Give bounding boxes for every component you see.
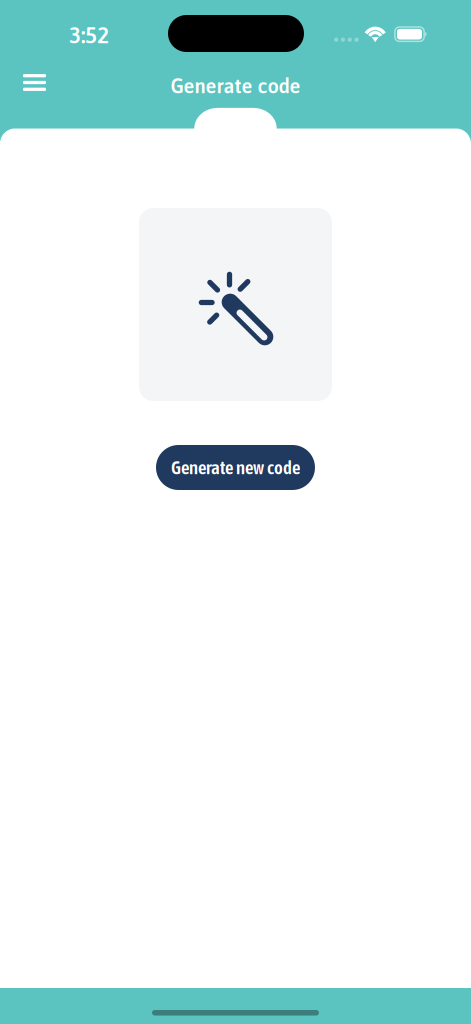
button[interactable]: Menu <box>11 64 58 101</box>
staticText: 3:52 <box>69 22 109 48</box>
button[interactable]: Generate new code <box>156 445 315 490</box>
staticText: Generate code <box>170 74 300 97</box>
staticText: Generate new code <box>171 457 300 478</box>
